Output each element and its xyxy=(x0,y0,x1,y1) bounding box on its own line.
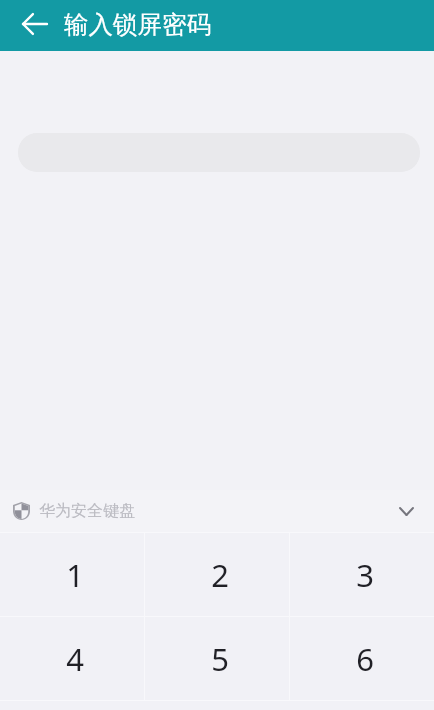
button[interactable]: 6 xyxy=(290,617,434,700)
button[interactable]: Back xyxy=(0,0,58,51)
button[interactable]: 5 xyxy=(145,617,289,700)
staticText: 1 xyxy=(66,554,84,596)
button[interactable]: 1 xyxy=(0,533,144,616)
button[interactable]: Collapse keyboard xyxy=(378,490,434,532)
staticText: 6 xyxy=(356,638,374,680)
button[interactable]: 2 xyxy=(145,533,289,616)
staticText: 2 xyxy=(211,554,229,596)
staticText: 输入锁屏密码 xyxy=(64,9,211,40)
button[interactable]: 3 xyxy=(290,533,434,616)
staticText: 4 xyxy=(66,638,84,680)
staticText: 3 xyxy=(356,554,374,596)
button[interactable]: 4 xyxy=(0,617,144,700)
staticText: 5 xyxy=(211,638,229,680)
staticText: 华为安全键盘 xyxy=(39,501,135,521)
